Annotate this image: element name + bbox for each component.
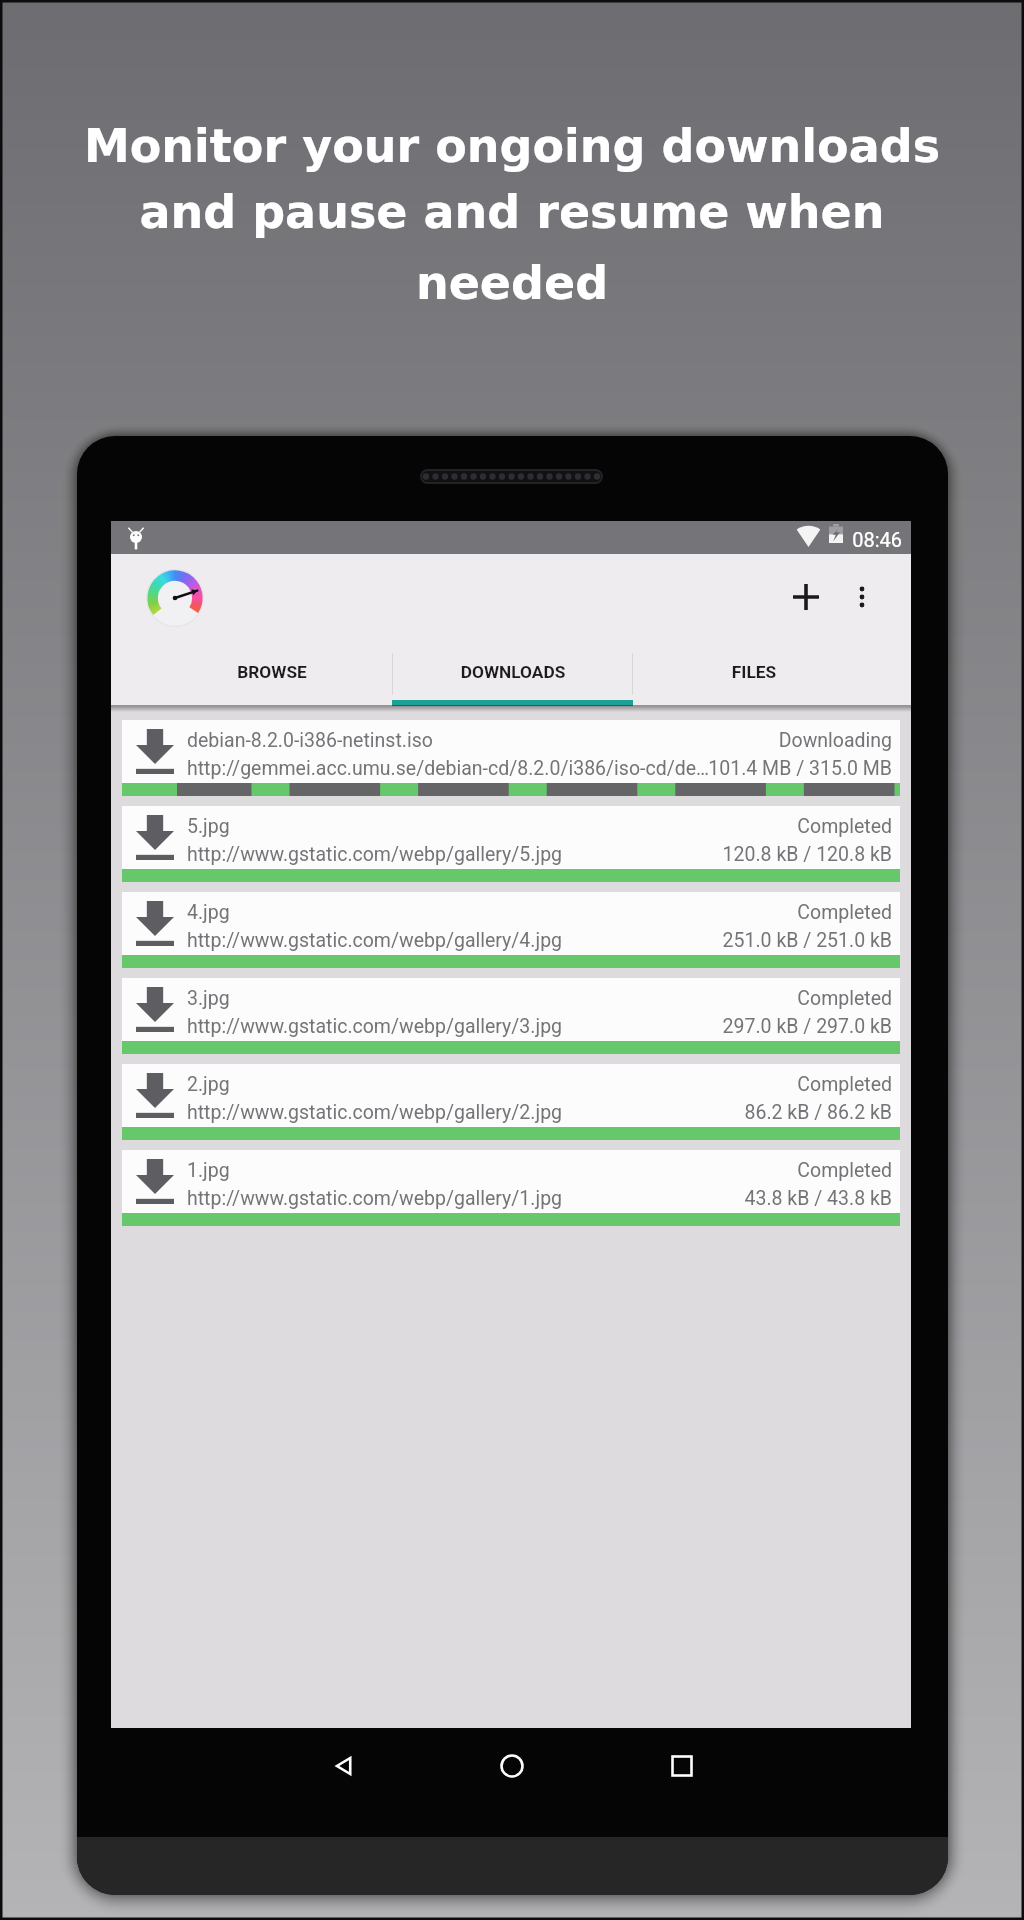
staticText: debian-8.2.0-i386-netinst.iso <box>187 729 707 752</box>
button[interactable]: 3.jpg <box>122 978 900 1054</box>
button[interactable]: Add download <box>777 568 835 626</box>
staticText: 4.jpg <box>187 901 707 924</box>
button[interactable]: Home <box>491 1745 533 1787</box>
staticText: BROWSE <box>192 662 352 682</box>
button[interactable]: BROWSE <box>111 647 392 706</box>
button[interactable]: Recents <box>661 1745 703 1787</box>
staticText: 297.0 kB / 297.0 kB <box>502 1015 892 1038</box>
staticText: 1.jpg <box>187 1159 707 1182</box>
button[interactable]: 5.jpg <box>122 806 900 882</box>
button[interactable]: 4.jpg <box>122 892 900 968</box>
button[interactable]: 2.jpg <box>122 1064 900 1140</box>
staticText: http://www.gstatic.com/webp/gallery/5.jp… <box>187 843 720 866</box>
staticText: Completed <box>502 1073 892 1096</box>
staticText: http://gemmei.acc.umu.se/debian-cd/8.2.0… <box>187 757 720 780</box>
staticText: 86.2 kB / 86.2 kB <box>502 1101 892 1124</box>
staticText: needed <box>0 256 1024 310</box>
staticText: http://www.gstatic.com/webp/gallery/1.jp… <box>187 1187 720 1210</box>
staticText: http://www.gstatic.com/webp/gallery/4.jp… <box>187 929 720 952</box>
button[interactable]: debian-8.2.0-i386-netinst.iso <box>122 720 900 796</box>
button[interactable]: 1.jpg <box>122 1150 900 1226</box>
button[interactable]: FILES <box>633 647 912 706</box>
button[interactable]: Open navigation <box>140 563 210 633</box>
button[interactable]: Back <box>323 1745 365 1787</box>
staticText: 251.0 kB / 251.0 kB <box>502 929 892 952</box>
staticText: Completed <box>502 901 892 924</box>
staticText: Completed <box>502 1159 892 1182</box>
staticText: 101.4 MB / 315.0 MB <box>502 757 892 780</box>
staticText: and pause and resume when <box>0 185 1024 239</box>
button[interactable]: DOWNLOADS <box>392 647 633 706</box>
staticText: Monitor your ongoing downloads <box>0 119 1024 173</box>
staticText: FILES <box>674 662 834 682</box>
staticText: 2.jpg <box>187 1073 707 1096</box>
staticText: 120.8 kB / 120.8 kB <box>502 843 892 866</box>
staticText: 5.jpg <box>187 815 707 838</box>
staticText: Downloading <box>502 729 892 752</box>
button[interactable]: More options <box>833 568 891 626</box>
staticText: 08:46 <box>802 528 902 551</box>
staticText: DOWNLOADS <box>433 662 593 682</box>
staticText: 3.jpg <box>187 987 707 1010</box>
staticText: http://www.gstatic.com/webp/gallery/3.jp… <box>187 1015 720 1038</box>
staticText: 43.8 kB / 43.8 kB <box>502 1187 892 1210</box>
staticText: Completed <box>502 815 892 838</box>
staticText: http://www.gstatic.com/webp/gallery/2.jp… <box>187 1101 720 1124</box>
staticText: Completed <box>502 987 892 1010</box>
